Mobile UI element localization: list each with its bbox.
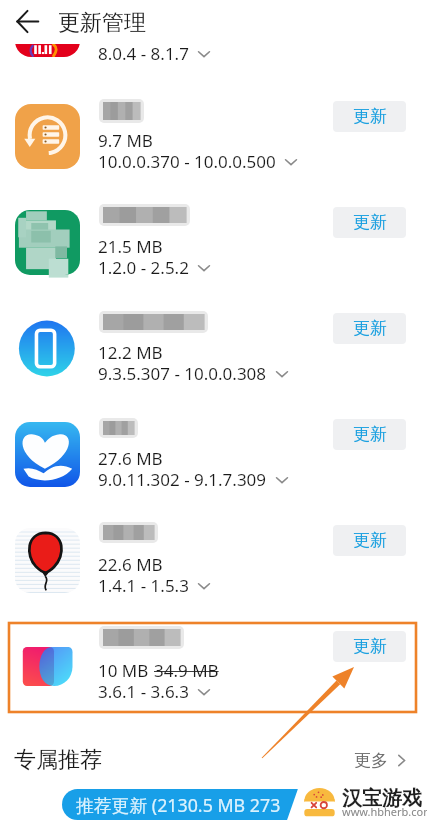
button[interactable]: 27.6 MB: [0, 415, 427, 521]
button[interactable]: 专属推荐: [14, 746, 102, 774]
staticText: 21.5 MB: [98, 235, 163, 258]
button[interactable]: 21.5 MB: [0, 203, 427, 309]
staticText: 更新: [353, 530, 387, 551]
button[interactable]: 更新: [333, 631, 406, 662]
staticText: 更新: [353, 106, 387, 127]
staticText: 推荐更新 (2130.5 MB 273: [76, 793, 281, 817]
staticText: 3.6.1 - 3.6.3: [98, 680, 189, 703]
button[interactable]: 推荐更新 (2130.5 MB 273: [62, 789, 312, 820]
button[interactable]: 8.0.4 - 8.1.7: [0, 38, 427, 97]
button[interactable]: 10 MB: [0, 627, 427, 733]
staticText: 更新: [353, 424, 387, 445]
staticText: 10.0.0.370 - 10.0.0.500: [98, 150, 276, 173]
button[interactable]: 更新: [333, 313, 406, 344]
button[interactable]: 更多: [354, 750, 409, 771]
staticText: 34.9 MB: [154, 659, 219, 682]
button[interactable]: 9.7 MB: [0, 97, 427, 203]
staticText: 1.2.0 - 2.5.2: [98, 256, 189, 279]
staticText: 专属推荐: [14, 746, 102, 774]
staticText: 10 MB: [98, 659, 149, 682]
staticText: 更新管理: [58, 9, 146, 37]
staticText: 更新: [353, 212, 387, 233]
staticText: 22.6 MB: [98, 553, 163, 576]
staticText: 更新: [353, 636, 387, 657]
button[interactable]: 更新: [333, 525, 406, 556]
staticText: 更多: [354, 750, 388, 771]
staticText: 汉宝游戏: [342, 786, 422, 811]
staticText: 27.6 MB: [98, 447, 163, 470]
button[interactable]: 12.2 MB: [0, 309, 427, 415]
staticText: www.hbherb.com: [342, 804, 427, 819]
staticText: 1.4.1 - 1.5.3: [98, 574, 189, 597]
staticText: 9.0.11.302 - 9.1.7.309: [98, 468, 267, 491]
button[interactable]: 更新: [333, 419, 406, 450]
staticText: 8.0.4 - 8.1.7: [98, 42, 189, 65]
staticText: 更新: [353, 318, 387, 339]
button[interactable]: Back: [9, 3, 45, 39]
staticText: 12.2 MB: [98, 341, 163, 364]
staticText: 9.7 MB: [98, 129, 153, 152]
button[interactable]: 更新: [333, 101, 406, 132]
button[interactable]: 更新: [333, 207, 406, 238]
button[interactable]: 22.6 MB: [0, 521, 427, 627]
staticText: 9.3.5.307 - 10.0.0.308: [98, 362, 267, 385]
